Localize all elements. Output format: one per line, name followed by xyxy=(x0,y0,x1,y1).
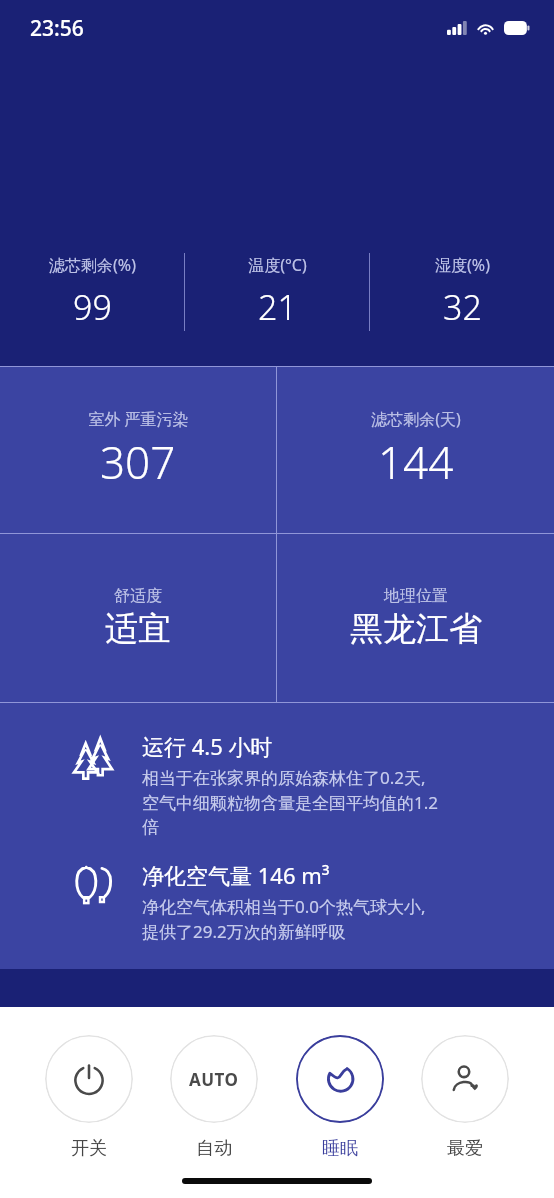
staticText: 144 xyxy=(378,432,454,492)
other: Air volume xyxy=(62,860,124,924)
staticText: 自动 xyxy=(196,1137,232,1160)
button[interactable]: 温度(°C) xyxy=(185,242,369,342)
button[interactable]: Forest xyxy=(0,731,554,838)
staticText: 地理位置 xyxy=(384,586,448,606)
staticText: 307 xyxy=(100,432,176,492)
staticText: 21 xyxy=(258,284,297,330)
staticText: 23:56 xyxy=(30,14,84,43)
button[interactable]: 湿度(%) xyxy=(370,242,554,342)
staticText: 湿度(%) xyxy=(435,254,490,276)
staticText: 相当于在张家界的原始森林住了0.2天, 空气中细颗粒物含量是全国平均值的1.2 … xyxy=(142,766,439,838)
staticText: 适宜 xyxy=(105,608,171,650)
button[interactable]: Air volume xyxy=(0,860,554,943)
button[interactable]: 滤芯剩余(天) xyxy=(277,367,554,533)
button[interactable]: 开关 xyxy=(39,1035,139,1160)
other: Forest xyxy=(62,731,124,795)
staticText: 滤芯剩余(%) xyxy=(49,254,136,276)
staticText: 滤芯剩余(天) xyxy=(371,408,461,430)
button[interactable]: 滤芯剩余(%) xyxy=(0,242,184,342)
staticText: 舒适度 xyxy=(114,586,162,606)
staticText: 32 xyxy=(443,284,482,330)
button[interactable]: 舒适度 xyxy=(0,534,276,702)
staticText: 睡眠 xyxy=(322,1137,358,1160)
button[interactable]: 地理位置 xyxy=(277,534,554,702)
staticText: 室外 严重污染 xyxy=(88,408,189,430)
staticText: 净化空气量 146 m³ xyxy=(142,860,330,890)
staticText: 温度(°C) xyxy=(248,254,307,276)
staticText: 运行 4.5 小时 xyxy=(142,731,273,761)
button[interactable]: 睡眠 xyxy=(290,1035,390,1160)
staticText: 最爱 xyxy=(447,1137,483,1160)
staticText: 黑龙江省 xyxy=(350,608,482,650)
staticText: 99 xyxy=(73,284,112,330)
staticText: 净化空气体积相当于0.0个热气球大小, 提供了29.2万次的新鲜呼吸 xyxy=(142,895,426,943)
staticText: AUTO xyxy=(189,1068,239,1091)
button[interactable]: AUTO xyxy=(164,1035,264,1160)
button[interactable]: 室外 严重污染 xyxy=(0,367,276,533)
button[interactable]: 最爱 xyxy=(415,1035,515,1160)
staticText: 开关 xyxy=(71,1137,107,1160)
